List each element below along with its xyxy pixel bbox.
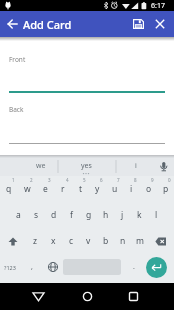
staticText: .: [133, 262, 135, 272]
button[interactable]: h: [97, 202, 114, 228]
button[interactable]: .: [128, 254, 140, 280]
staticText: 9: [151, 177, 154, 183]
staticText: s: [34, 209, 39, 221]
staticText: u: [112, 183, 118, 195]
button[interactable]: u: [106, 176, 123, 202]
button[interactable]: r: [54, 176, 72, 202]
button[interactable]: m: [131, 228, 148, 254]
button[interactable]: x: [44, 228, 62, 254]
button[interactable]: f: [63, 202, 80, 228]
staticText: b: [103, 235, 109, 247]
staticText: k: [137, 209, 142, 221]
button[interactable]: [128, 11, 149, 37]
button[interactable]: ,: [26, 254, 38, 280]
staticText: m: [136, 235, 144, 247]
staticText: 0: [168, 177, 171, 183]
staticText: 7: [117, 177, 120, 183]
staticText: o: [146, 183, 152, 195]
staticText: n: [120, 235, 126, 247]
staticText: yes: [81, 161, 92, 171]
staticText: p: [163, 183, 169, 195]
staticText: z: [33, 235, 37, 247]
staticText: t: [79, 183, 83, 195]
button[interactable]: Front: [0, 43, 174, 93]
staticText: e: [43, 183, 48, 195]
button[interactable]: [44, 254, 61, 280]
button[interactable]: n: [114, 228, 131, 254]
staticText: y: [95, 183, 100, 195]
staticText: c: [69, 235, 74, 247]
button[interactable]: s: [27, 202, 45, 228]
button[interactable]: b: [97, 228, 114, 254]
staticText: h: [103, 209, 109, 221]
staticText: i: [135, 161, 137, 171]
button[interactable]: c: [62, 228, 80, 254]
button[interactable]: k: [131, 202, 148, 228]
button[interactable]: z: [26, 228, 44, 254]
button[interactable]: o: [140, 176, 157, 202]
staticText: ?123: [4, 264, 16, 271]
button[interactable]: v: [80, 228, 97, 254]
button[interactable]: l: [148, 202, 165, 228]
staticText: we: [36, 161, 46, 171]
button[interactable]: ?123: [0, 254, 20, 280]
button[interactable]: a: [9, 202, 27, 228]
button[interactable]: [148, 228, 174, 254]
button[interactable]: [146, 257, 167, 278]
button[interactable]: e: [36, 176, 54, 202]
staticText: Front: [9, 55, 26, 64]
button[interactable]: d: [45, 202, 63, 228]
staticText: Add Card: [23, 17, 72, 32]
staticText: l: [155, 209, 158, 221]
button[interactable]: i: [123, 176, 140, 202]
staticText: 5: [83, 177, 86, 183]
staticText: d: [51, 209, 57, 221]
staticText: j: [121, 209, 124, 221]
staticText: 4: [66, 177, 69, 183]
button[interactable]: [150, 11, 170, 37]
staticText: i: [130, 183, 133, 195]
staticText: v: [86, 235, 91, 247]
button[interactable]: i: [120, 155, 151, 176]
button[interactable]: [75, 283, 99, 310]
button[interactable]: we: [24, 155, 58, 176]
button[interactable]: p: [157, 176, 174, 202]
staticText: 6: [100, 177, 103, 183]
staticText: Back: [9, 105, 24, 114]
staticText: w: [24, 183, 31, 195]
staticText: r: [61, 183, 65, 195]
staticText: q: [6, 183, 12, 195]
staticText: 8: [134, 177, 137, 183]
staticText: f: [70, 209, 73, 221]
button[interactable]: [2, 11, 22, 37]
button[interactable]: y: [89, 176, 106, 202]
staticText: 6:17: [151, 1, 165, 11]
staticText: g: [86, 209, 92, 221]
staticText: 2: [30, 177, 33, 183]
button[interactable]: w: [18, 176, 36, 202]
button[interactable]: [0, 228, 26, 254]
button[interactable]: q: [0, 176, 18, 202]
staticText: 1: [12, 177, 15, 183]
button[interactable]: t: [72, 176, 89, 202]
staticText: 3: [48, 177, 51, 183]
button[interactable]: j: [114, 202, 131, 228]
button[interactable]: [121, 283, 145, 310]
staticText: x: [51, 235, 56, 247]
staticText: ,: [31, 262, 33, 272]
button[interactable]: g: [80, 202, 97, 228]
button[interactable]: [26, 283, 51, 310]
button[interactable]: Back: [0, 95, 174, 145]
button[interactable]: yes: [68, 155, 104, 176]
staticText: a: [16, 209, 21, 221]
